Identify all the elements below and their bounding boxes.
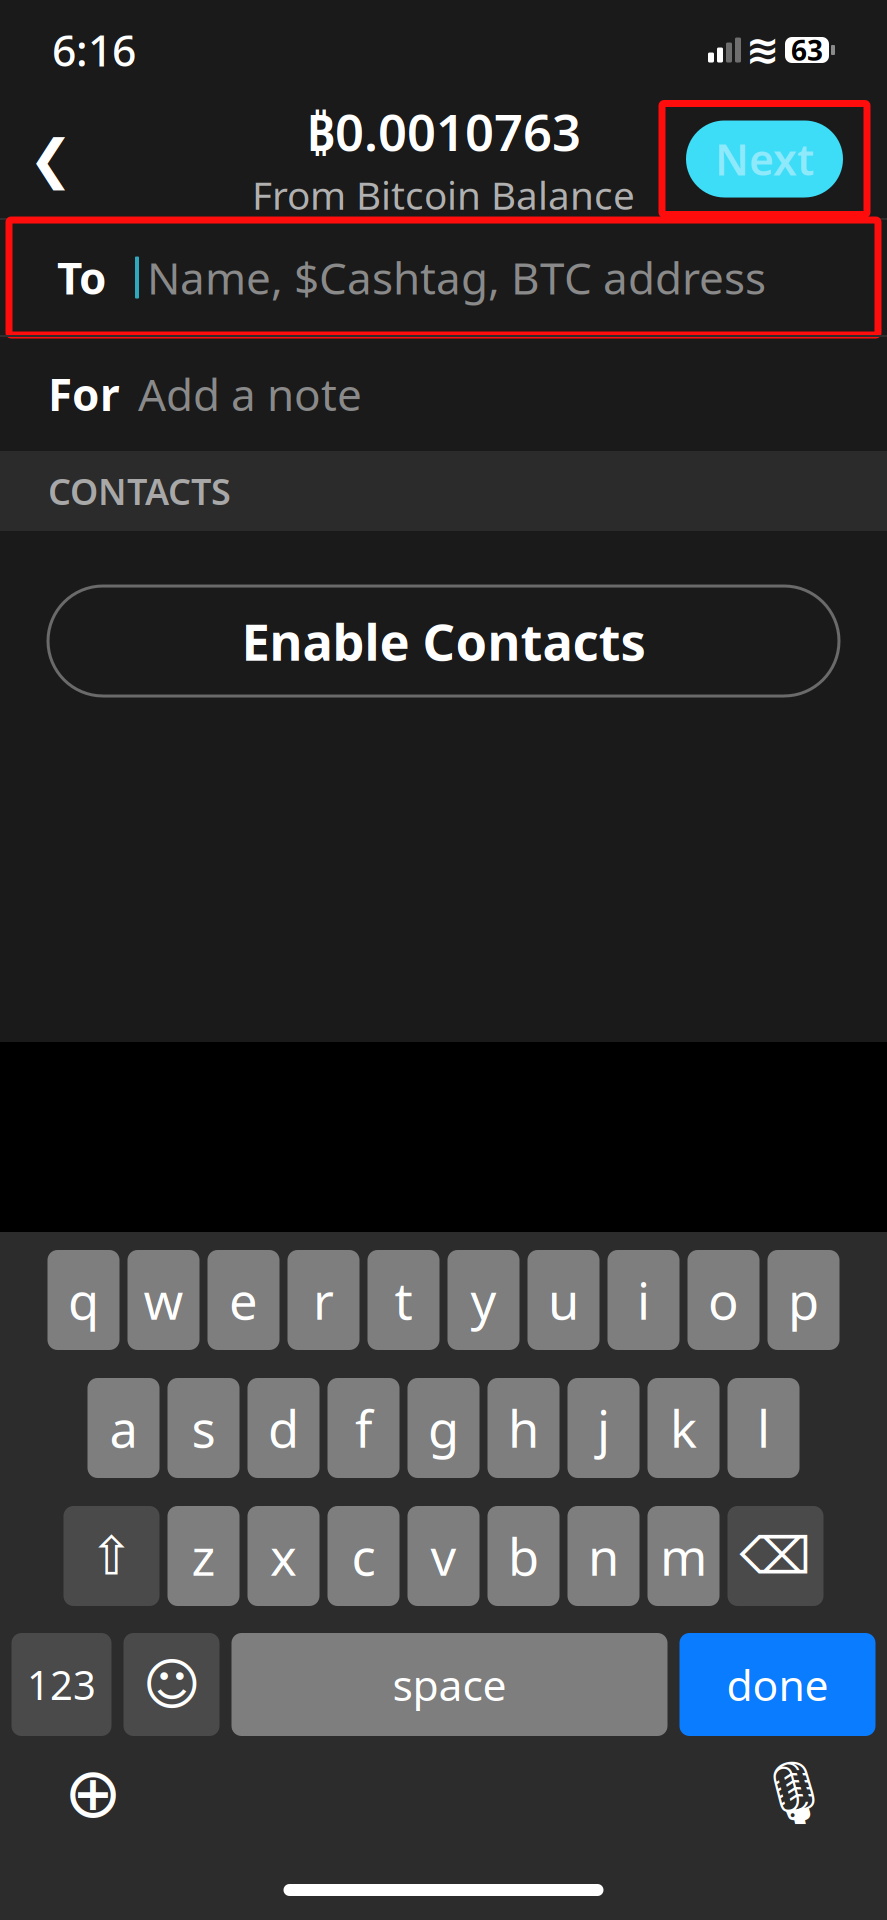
- staticText: o: [708, 1266, 739, 1334]
- button[interactable]: To: [0, 220, 887, 335]
- staticText: u: [548, 1266, 579, 1334]
- staticText: y: [470, 1266, 496, 1334]
- staticText: Enable Contacts: [241, 607, 645, 675]
- staticText: d: [268, 1394, 299, 1462]
- staticText: For: [48, 365, 120, 423]
- button[interactable]: d: [247, 1378, 319, 1478]
- button[interactable]: n: [567, 1506, 639, 1606]
- staticText: ☺: [142, 1653, 200, 1716]
- staticText: space: [392, 1656, 506, 1713]
- staticText: m: [660, 1522, 707, 1590]
- staticText: i: [637, 1266, 650, 1334]
- button[interactable]: k: [647, 1378, 719, 1478]
- staticText: done: [726, 1656, 828, 1713]
- staticText: e: [229, 1266, 258, 1334]
- button[interactable]: Enable Contacts: [48, 586, 839, 696]
- staticText: j: [597, 1394, 610, 1462]
- staticText: z: [191, 1522, 215, 1590]
- staticText: ⊕: [64, 1754, 122, 1832]
- staticText: ₿0.0010763: [306, 98, 581, 165]
- button[interactable]: r: [287, 1250, 359, 1350]
- button[interactable]: f: [327, 1378, 399, 1478]
- staticText: b: [508, 1522, 539, 1590]
- staticText: g: [428, 1394, 459, 1462]
- button[interactable]: g: [407, 1378, 479, 1478]
- staticText: From Bitcoin Balance: [252, 169, 635, 220]
- staticText: To: [57, 248, 107, 307]
- button[interactable]: u: [527, 1250, 599, 1350]
- staticText: ≋: [746, 27, 780, 73]
- button[interactable]: done: [679, 1633, 875, 1736]
- button[interactable]: x: [247, 1506, 319, 1606]
- button[interactable]: i: [607, 1250, 679, 1350]
- staticText: f: [355, 1394, 372, 1462]
- staticText: h: [508, 1394, 539, 1462]
- staticText: 123: [27, 1658, 96, 1711]
- staticText: 63: [791, 31, 823, 69]
- staticText: c: [351, 1522, 375, 1590]
- button[interactable]: z: [167, 1506, 239, 1606]
- button[interactable]: b: [487, 1506, 559, 1606]
- button[interactable]: ⇧: [63, 1506, 159, 1606]
- staticText: Add a note: [138, 365, 362, 423]
- button[interactable]: Dictate: [759, 1758, 829, 1828]
- staticText: x: [270, 1522, 297, 1590]
- staticText: n: [588, 1522, 619, 1590]
- button[interactable]: For: [0, 337, 887, 451]
- button[interactable]: e: [207, 1250, 279, 1350]
- button[interactable]: 123: [11, 1633, 111, 1736]
- staticText: 6:16: [52, 22, 136, 78]
- button[interactable]: l: [727, 1378, 799, 1478]
- button[interactable]: Change keyboard: [58, 1758, 128, 1828]
- button[interactable]: c: [327, 1506, 399, 1606]
- staticText: Next: [715, 131, 814, 187]
- staticText: a: [109, 1394, 137, 1462]
- staticText: t: [394, 1266, 412, 1334]
- button[interactable]: h: [487, 1378, 559, 1478]
- staticText: r: [313, 1266, 334, 1334]
- button[interactable]: t: [367, 1250, 439, 1350]
- staticText: ❮: [28, 129, 73, 189]
- staticText: s: [191, 1394, 215, 1462]
- staticText: ⌫: [739, 1527, 811, 1585]
- staticText: k: [670, 1394, 697, 1462]
- staticText: p: [788, 1266, 819, 1334]
- staticText: w: [143, 1266, 183, 1334]
- staticText: Name, $Cashtag, BTC address: [147, 248, 766, 307]
- staticText: v: [430, 1522, 456, 1590]
- staticText: q: [68, 1266, 99, 1334]
- button[interactable]: m: [647, 1506, 719, 1606]
- button[interactable]: q: [47, 1250, 119, 1350]
- button[interactable]: Next: [662, 103, 867, 214]
- button[interactable]: space: [231, 1633, 667, 1736]
- staticText: CONTACTS: [48, 467, 231, 515]
- button[interactable]: j: [567, 1378, 639, 1478]
- button[interactable]: Back: [20, 128, 82, 190]
- staticText: 🎙: [755, 1758, 833, 1828]
- button[interactable]: w: [127, 1250, 199, 1350]
- button[interactable]: p: [767, 1250, 839, 1350]
- staticText: l: [757, 1394, 770, 1462]
- button[interactable]: ☺: [123, 1633, 219, 1736]
- button[interactable]: o: [687, 1250, 759, 1350]
- button[interactable]: ⌫: [727, 1506, 823, 1606]
- staticText: ⇧: [89, 1526, 134, 1586]
- button[interactable]: a: [87, 1378, 159, 1478]
- button[interactable]: v: [407, 1506, 479, 1606]
- button[interactable]: s: [167, 1378, 239, 1478]
- button[interactable]: y: [447, 1250, 519, 1350]
